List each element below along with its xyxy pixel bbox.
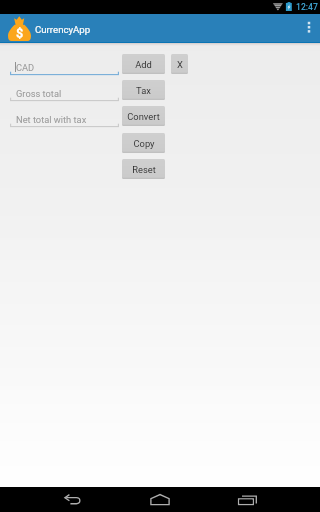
- button[interactable]: Gross total: [6, 80, 123, 104]
- staticText: 12:47: [296, 2, 318, 12]
- button[interactable]: Net total with tax: [6, 106, 123, 130]
- button[interactable]: Back: [53, 487, 93, 512]
- staticText: Reset: [132, 164, 156, 175]
- staticText: X: [177, 59, 183, 70]
- staticText: Add: [135, 59, 152, 70]
- button[interactable]: Recents: [227, 487, 267, 512]
- button[interactable]: More options: [298, 14, 320, 42]
- staticText: CurrencyApp: [35, 24, 91, 35]
- staticText: Copy: [133, 138, 155, 149]
- button[interactable]: CAD: [6, 54, 123, 78]
- staticText: CAD: [16, 62, 35, 73]
- button[interactable]: Copy: [122, 133, 165, 153]
- button[interactable]: Convert: [122, 106, 165, 126]
- staticText: $: [16, 26, 24, 41]
- button[interactable]: X: [171, 54, 188, 74]
- staticText: Convert: [127, 111, 160, 122]
- button[interactable]: Tax: [122, 80, 165, 100]
- staticText: Tax: [136, 85, 151, 96]
- staticText: Gross total: [16, 88, 62, 99]
- button[interactable]: Home: [140, 487, 180, 512]
- staticText: Net total with tax: [16, 114, 87, 125]
- button[interactable]: Add: [122, 54, 165, 74]
- button[interactable]: Reset: [122, 159, 165, 179]
